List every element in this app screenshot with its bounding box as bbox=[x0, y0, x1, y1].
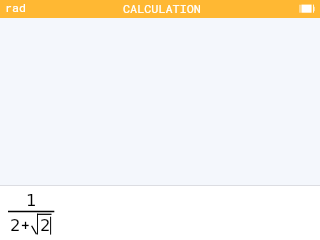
staticText: CALCULATION bbox=[123, 1, 201, 17]
staticText: rad bbox=[5, 0, 26, 15]
button[interactable]: Expression input bbox=[0, 186, 320, 240]
staticText: 1 bbox=[26, 191, 37, 210]
staticText: 2 bbox=[40, 216, 51, 235]
staticText: 2 bbox=[10, 216, 21, 235]
button[interactable]: rad bbox=[0, 0, 32, 18]
button[interactable]: Battery level bbox=[298, 2, 316, 15]
